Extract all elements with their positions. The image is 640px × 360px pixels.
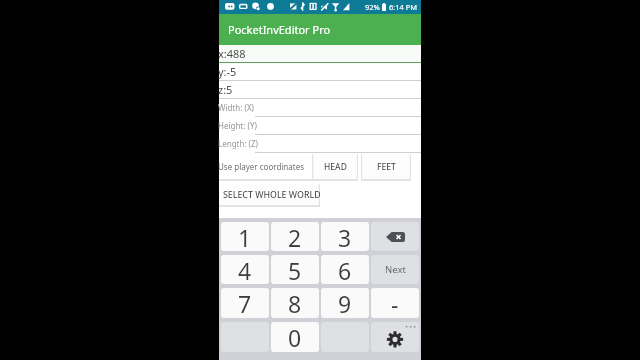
button[interactable]: 5 xyxy=(271,255,319,284)
staticText: 4 xyxy=(238,255,252,284)
button[interactable]: Length: (Z) xyxy=(219,135,421,153)
button[interactable]: 7 xyxy=(221,288,269,318)
button[interactable]: x:488 xyxy=(219,45,421,63)
staticText: 92% xyxy=(365,2,380,12)
button[interactable]: y:-5 xyxy=(219,63,421,81)
staticText: y:-5 xyxy=(218,64,237,79)
button[interactable]: - xyxy=(371,288,419,318)
button[interactable]: z:5 xyxy=(219,81,421,99)
staticText: 3 xyxy=(338,222,352,251)
button[interactable]: 8 xyxy=(271,288,319,318)
button[interactable]: SELECT WHOLE WORLD xyxy=(219,184,320,207)
staticText: FEET xyxy=(377,161,396,173)
staticText: 9 xyxy=(338,288,352,318)
button[interactable]: 3 xyxy=(321,222,369,251)
button[interactable]: Backspace xyxy=(371,222,419,251)
staticText: 2 xyxy=(288,222,302,251)
button[interactable]: Use player coordinates xyxy=(219,154,312,181)
button[interactable]: 1 xyxy=(221,222,269,251)
staticText: 7 xyxy=(238,288,252,318)
button[interactable]: Height: (Y) xyxy=(219,117,421,135)
button[interactable]: Settings xyxy=(371,322,419,352)
staticText: z:5 xyxy=(218,82,233,97)
staticText: 6:14 PM xyxy=(389,2,418,12)
button[interactable]: PocketInvEditor Pro xyxy=(219,14,421,45)
button[interactable]: FEET xyxy=(361,154,411,181)
staticText: - xyxy=(391,288,399,318)
staticText: PocketInvEditor Pro xyxy=(228,22,331,37)
staticText: 0 xyxy=(288,322,302,352)
staticText: x:488 xyxy=(218,46,246,61)
staticText: Height: (Y) xyxy=(218,120,257,131)
staticText: 8 xyxy=(288,288,302,318)
staticText: 6 xyxy=(338,255,352,284)
button[interactable]: 4 xyxy=(221,255,269,284)
button[interactable]: Width: (X) xyxy=(219,99,421,117)
button[interactable]: 9 xyxy=(321,288,369,318)
button[interactable]: 0 xyxy=(271,322,319,352)
staticText: Length: (Z) xyxy=(218,138,258,149)
staticText: SELECT WHOLE WORLD xyxy=(223,189,320,201)
staticText: Use player coordinates xyxy=(218,161,305,172)
staticText: 5 xyxy=(288,255,302,284)
button[interactable]: HEAD xyxy=(312,154,358,181)
staticText: Next xyxy=(385,263,406,276)
staticText: Width: (X) xyxy=(218,102,254,113)
button[interactable]: 6 xyxy=(321,255,369,284)
button[interactable]: 2 xyxy=(271,222,319,251)
staticText: HEAD xyxy=(324,161,347,173)
staticText: 1 xyxy=(238,222,252,251)
button[interactable]: Next xyxy=(371,255,419,284)
